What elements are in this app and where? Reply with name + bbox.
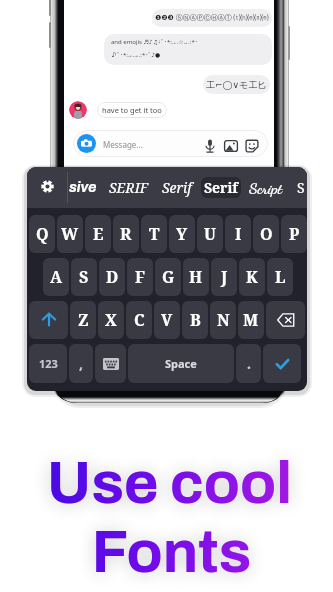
button[interactable]: R [113,215,139,253]
staticText: U [204,223,216,245]
staticText: V [161,309,173,331]
button[interactable]: C [126,301,152,339]
button[interactable]: Y [169,215,195,253]
button[interactable]: Serif [155,177,199,198]
staticText: P [289,223,300,245]
button[interactable]: J [211,258,237,296]
staticText: K [246,266,258,288]
staticText: Serif [204,178,239,197]
staticText: Space [165,356,197,371]
button[interactable]: S [291,177,307,198]
button[interactable]: T [141,215,167,253]
staticText: S [79,266,89,288]
staticText: 123 [39,356,58,371]
button[interactable]: L [267,258,293,296]
button[interactable]: 123 [29,344,67,383]
button[interactable]: Script [244,177,288,198]
staticText: 工⌐◯∨モ工匕 [206,79,267,90]
button[interactable]: have to get it too [97,102,167,118]
staticText: ❶❷❸ ⓈⓃⒶⓅⒸⒽⒶⓉ ⒯⒣⒠⒮⒠ [155,13,269,23]
staticText: D [106,266,119,288]
button[interactable]: W [57,215,83,253]
button[interactable]: X [98,301,124,339]
staticText: sive [69,180,97,195]
button[interactable]: B [182,301,208,339]
button[interactable]: N [210,301,236,339]
staticText: J [221,266,228,288]
staticText: R [120,223,132,245]
button[interactable]: K [239,258,265,296]
button[interactable]: sive [69,177,97,198]
button[interactable]: S [71,258,97,296]
staticText: O [260,223,273,245]
button[interactable]: SERIF [103,177,154,198]
button[interactable]: Sticker [244,138,260,154]
staticText: . [247,354,251,373]
button[interactable]: P [281,215,307,253]
staticText: and emojis ♬♪♫♩ﾟ･*:.｡.☆.｡.:*･ ♪ﾟ･*:.｡..｡… [111,38,198,58]
button[interactable]: A [43,258,69,296]
button[interactable]: I [225,215,251,253]
button[interactable]: H [183,258,209,296]
staticText: have to get it too [102,105,162,115]
button[interactable]: Z [70,301,96,339]
staticText: N [217,309,230,331]
staticText: M [243,309,259,331]
staticText: W [61,223,79,245]
button[interactable]: Serif [201,177,241,198]
button[interactable]: E [85,215,111,253]
button[interactable]: F [127,258,153,296]
staticText: Fonts [5,520,333,584]
staticText: E [93,223,104,245]
button[interactable]: M [238,301,264,339]
staticText: I [235,223,242,245]
button[interactable]: V [154,301,180,339]
button[interactable]: Backspace [266,301,305,339]
staticText: B [190,309,201,331]
staticText: SERIF [109,178,149,197]
button[interactable]: Q [29,215,55,253]
button[interactable]: G [155,258,181,296]
button[interactable]: Voice [202,138,218,154]
staticText: A [50,266,63,288]
button[interactable]: Space [128,344,234,383]
button[interactable]: Enter [263,344,301,383]
staticText: Serif [162,178,192,197]
button[interactable]: Switch keyboard [95,344,126,383]
button[interactable]: Camera [77,134,96,153]
staticText: Z [78,309,89,331]
staticText: X [105,309,117,331]
staticText: Script [249,179,283,197]
staticText: F [135,266,145,288]
button[interactable]: Shift [29,301,68,339]
staticText: Use cool [3,451,333,515]
staticText: Y [176,223,188,245]
staticText: G [162,266,175,288]
button[interactable]: , [69,344,93,383]
button[interactable]: Gallery [223,138,239,154]
button[interactable]: O [253,215,279,253]
staticText: C [134,309,145,331]
button[interactable]: D [99,258,125,296]
staticText: , [79,354,83,373]
staticText: Q [36,223,49,245]
button[interactable]: U [197,215,223,253]
button[interactable] [73,130,268,157]
staticText: L [275,266,286,288]
staticText: S [297,178,305,197]
button[interactable]: . [236,344,261,383]
staticText: T [149,223,160,245]
staticText: H [189,266,203,288]
staticText: Message... [103,139,143,150]
button[interactable]: Settings [41,180,54,193]
